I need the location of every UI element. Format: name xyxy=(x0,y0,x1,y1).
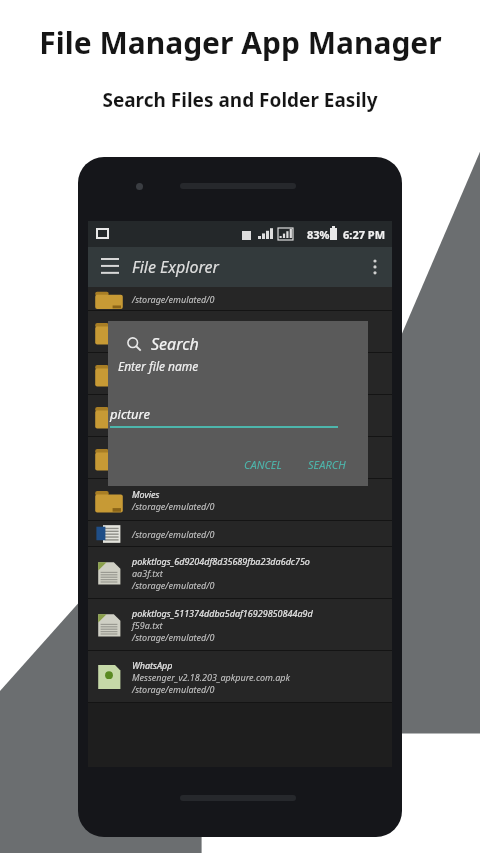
staticText: /storage/emulated/0 xyxy=(132,293,215,305)
button[interactable]: Pictures xyxy=(88,395,392,437)
button[interactable]: Download xyxy=(88,437,392,479)
button[interactable]: LazyList xyxy=(88,311,392,353)
staticText: Pictures xyxy=(132,404,164,416)
staticText: /storage/emulated/0 xyxy=(132,528,215,540)
staticText: pokktlogs_6d9204df8d35689fba23da6dc75o xyxy=(132,555,310,567)
button[interactable]: pokktlogs_511374ddba5daf16929850844a9d xyxy=(88,599,392,651)
button[interactable]: Movies xyxy=(88,479,392,521)
staticText: CANCEL xyxy=(244,457,282,472)
staticText: File Manager App Manager xyxy=(39,22,442,63)
button[interactable]: Open navigation drawer xyxy=(88,247,132,287)
staticText: Search Files and Folder Easily xyxy=(102,87,378,113)
button[interactable]: /storage/emulated/0 xyxy=(88,521,392,547)
button[interactable]: CANCEL xyxy=(236,453,290,476)
button[interactable]: SEARCH xyxy=(300,453,354,476)
staticText: SEARCH xyxy=(308,457,346,472)
staticText: 6:27 PM xyxy=(343,227,386,242)
button[interactable]: System xyxy=(88,353,392,395)
staticText: Movies xyxy=(132,488,160,500)
button[interactable]: /storage/emulated/0 xyxy=(88,287,392,311)
staticText: pokktlogs_511374ddba5daf16929850844a9d xyxy=(132,607,313,619)
staticText: /storage/emulated/0 xyxy=(132,500,215,512)
staticText: /storage/emulated/0 xyxy=(132,683,215,695)
staticText: /storage/emulated/0 xyxy=(132,579,215,591)
staticText: aa3f.txt xyxy=(132,567,163,579)
staticText: File Explorer xyxy=(132,256,219,278)
staticText: 83% xyxy=(307,227,330,242)
button[interactable]: pokktlogs_6d9204df8d35689fba23da6dc75o xyxy=(88,547,392,599)
staticText: /storage/emulated/0 xyxy=(132,416,215,428)
staticText: f59a.txt xyxy=(132,619,163,631)
staticText: /storage/emulated/0 xyxy=(132,332,215,344)
staticText: System xyxy=(132,362,160,374)
staticText: Messenger_v2.18.203_apkpure.com.apk xyxy=(132,671,290,683)
staticText: WhatsApp xyxy=(132,659,173,671)
staticText: /storage/emulated/0 xyxy=(132,631,215,643)
staticText: LazyList xyxy=(132,320,164,332)
staticText: Search xyxy=(151,333,199,355)
staticText: Enter file name xyxy=(118,358,199,374)
staticText: picture xyxy=(110,405,151,423)
button[interactable]: WhatsApp xyxy=(88,651,392,703)
button[interactable]: More options xyxy=(358,247,392,287)
